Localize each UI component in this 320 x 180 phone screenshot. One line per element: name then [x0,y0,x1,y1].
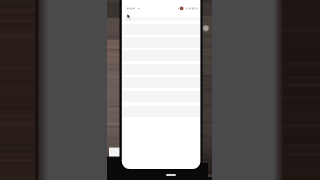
other: Status bar [122,0,200,12]
button[interactable]: Toolbar [122,17,200,21]
button[interactable]: Home [166,174,176,176]
